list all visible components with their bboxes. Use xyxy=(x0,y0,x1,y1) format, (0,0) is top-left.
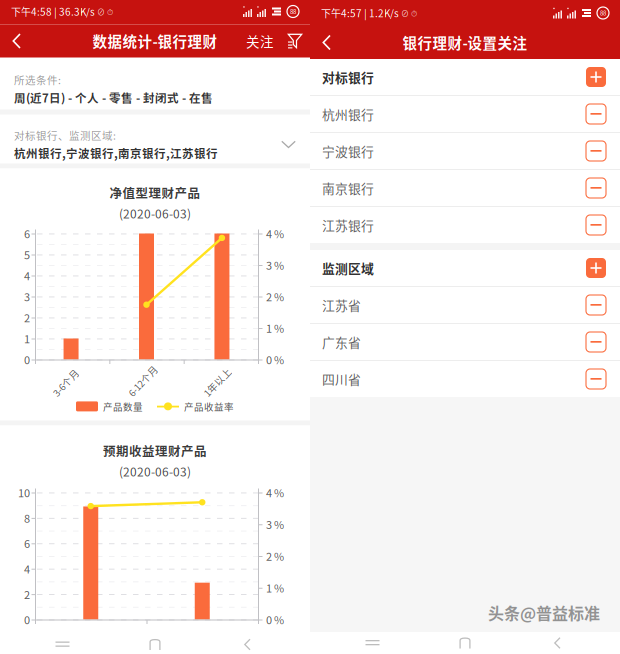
button[interactable]: Home xyxy=(435,632,495,654)
staticText: 南京银行 xyxy=(322,179,374,197)
staticText: 广东省 xyxy=(322,333,361,351)
staticText: 银行理财-设置关注 xyxy=(402,32,527,53)
button[interactable]: Home xyxy=(125,633,185,654)
staticText: 1 % xyxy=(266,320,284,336)
staticText: 产品收益率 xyxy=(184,399,234,413)
staticText: 关注 xyxy=(246,31,274,51)
staticText: 对标银行、监测区域: xyxy=(14,128,116,143)
button[interactable]: 宁波银行 xyxy=(310,133,620,169)
staticText: 头条@普益标准 xyxy=(488,601,600,624)
staticText: 预期收益理财产品 xyxy=(103,441,207,460)
staticText: 数据统计-银行理财 xyxy=(92,30,217,51)
button[interactable]: 南京银行 xyxy=(310,170,620,206)
staticText: 江苏银行 xyxy=(322,216,374,234)
button[interactable]: 监测区域 xyxy=(310,250,620,286)
staticText: 1 % xyxy=(266,580,284,596)
staticText: 3 xyxy=(24,288,30,304)
staticText: 8 xyxy=(24,510,30,526)
button[interactable]: 广东省 xyxy=(310,324,620,360)
staticText: 净值型理财产品 xyxy=(109,183,200,202)
button[interactable]: Back xyxy=(310,26,344,59)
staticText: ⊘ ⏱ xyxy=(399,7,417,19)
staticText: 2 % xyxy=(266,548,284,564)
staticText: 对标银行 xyxy=(322,68,374,86)
staticText: 3 % xyxy=(266,516,284,532)
staticText: 1年以上 xyxy=(201,390,236,403)
staticText: 4 xyxy=(24,267,30,283)
staticText: 宁波银行 xyxy=(322,142,374,160)
button[interactable]: Recents xyxy=(342,632,402,654)
staticText: 6 xyxy=(24,225,30,241)
staticText: 4 xyxy=(24,561,30,577)
staticText: 0 % xyxy=(266,611,284,627)
staticText: 6-12个月 xyxy=(125,390,163,403)
staticText: 2 xyxy=(24,586,30,602)
staticText: 江苏省 xyxy=(322,296,361,314)
staticText: 产品数量 xyxy=(103,399,143,413)
staticText: 88 xyxy=(600,9,606,17)
button[interactable]: Filter xyxy=(280,24,310,57)
staticText: 监测区域 xyxy=(322,259,374,277)
staticText: 2 % xyxy=(266,288,284,304)
staticText: 4 % xyxy=(266,484,284,500)
staticText: (2020-06-03) xyxy=(119,463,191,480)
staticText: 四川省 xyxy=(322,370,361,388)
staticText: 10 xyxy=(18,484,30,500)
button[interactable]: 四川省 xyxy=(310,361,620,397)
staticText: ⊘ ⏱ xyxy=(95,6,113,17)
button[interactable]: 杭州银行 xyxy=(310,96,620,132)
staticText: 杭州银行,宁波银行,南京银行,江苏银行 xyxy=(14,145,218,161)
button[interactable]: Back xyxy=(0,24,34,57)
staticText: 88 xyxy=(290,7,296,16)
button[interactable]: 对标银行 xyxy=(310,59,620,95)
staticText: 3-6个月 xyxy=(50,390,83,403)
staticText: 3 % xyxy=(266,257,284,273)
staticText: 0 xyxy=(24,351,30,367)
staticText: 5 xyxy=(24,246,30,262)
staticText: 4 % xyxy=(266,225,284,241)
staticText: 下午4:58 | 36.3K/s xyxy=(11,4,95,19)
staticText: (2020-06-03) xyxy=(119,205,191,222)
staticText: 2 xyxy=(24,309,30,325)
staticText: 6 xyxy=(24,535,30,551)
staticText: 1 xyxy=(24,330,30,346)
button[interactable]: 江苏银行 xyxy=(310,207,620,243)
button[interactable]: 关注 xyxy=(240,24,280,57)
button[interactable]: Back xyxy=(527,632,587,654)
staticText: 0 xyxy=(24,611,30,627)
staticText: 杭州银行 xyxy=(322,105,374,123)
button[interactable]: Recents xyxy=(32,633,92,654)
button[interactable]: Back xyxy=(217,633,277,654)
staticText: 0 % xyxy=(266,351,284,367)
button[interactable]: 江苏省 xyxy=(310,287,620,323)
staticText: 下午4:57 | 1.2K/s xyxy=(321,6,399,20)
staticText: 周(近7日) - 个人 - 零售 - 封闭式 - 在售 xyxy=(14,89,213,106)
staticText: 所选条件: xyxy=(14,72,61,87)
